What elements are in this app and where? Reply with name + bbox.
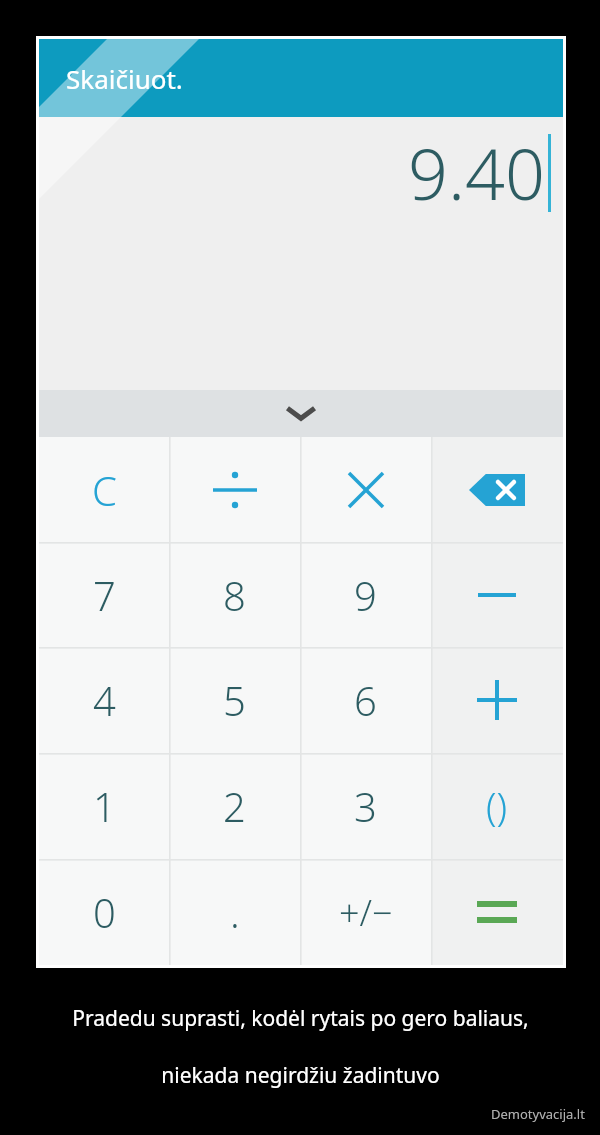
staticText: Pradedu suprasti, kodėl rytais po gero b… <box>72 1004 529 1033</box>
staticText: 9.40 <box>408 125 545 220</box>
staticText: () <box>486 780 508 832</box>
button[interactable]: Skaičiuot. <box>39 39 563 117</box>
button[interactable]: 1 <box>39 753 169 859</box>
staticText: +/− <box>339 888 393 937</box>
button[interactable]: 9.40 <box>39 117 563 390</box>
staticText: C <box>92 463 117 517</box>
button[interactable]: Parentheses <box>431 753 563 859</box>
button[interactable]: Multiply <box>300 437 431 542</box>
button[interactable]: Backspace <box>431 437 563 542</box>
staticText: 6 <box>354 673 377 727</box>
button[interactable]: 0 <box>39 859 169 965</box>
button[interactable]: Divide <box>169 437 300 542</box>
staticText: 8 <box>223 568 246 622</box>
button[interactable]: 3 <box>300 753 431 859</box>
staticText: niekada negirdžiu žadintuvo <box>161 1061 440 1090</box>
button[interactable]: Clear <box>39 437 169 542</box>
button[interactable]: Plus <box>431 647 563 753</box>
button[interactable]: Equals <box>431 859 563 965</box>
staticText: 3 <box>354 779 377 833</box>
staticText: 4 <box>93 673 116 727</box>
button[interactable]: 2 <box>169 753 300 859</box>
button[interactable]: 8 <box>169 542 300 647</box>
staticText: 1 <box>93 779 116 833</box>
button[interactable]: . <box>169 859 300 965</box>
button[interactable]: 4 <box>39 647 169 753</box>
staticText: . <box>230 885 240 939</box>
staticText: 5 <box>223 673 246 727</box>
staticText: 7 <box>93 568 116 622</box>
staticText: 0 <box>93 885 116 939</box>
button[interactable]: 5 <box>169 647 300 753</box>
staticText: 2 <box>223 779 246 833</box>
staticText: Skaičiuot. <box>66 61 183 96</box>
staticText: 9 <box>354 568 377 622</box>
button[interactable]: 9 <box>300 542 431 647</box>
staticText: Demotyvacija.lt <box>491 1105 585 1123</box>
button[interactable]: Collapse keypad <box>39 390 563 437</box>
button[interactable]: 6 <box>300 647 431 753</box>
button[interactable]: 7 <box>39 542 169 647</box>
button[interactable]: Minus <box>431 542 563 647</box>
button[interactable]: Plus minus <box>300 859 431 965</box>
